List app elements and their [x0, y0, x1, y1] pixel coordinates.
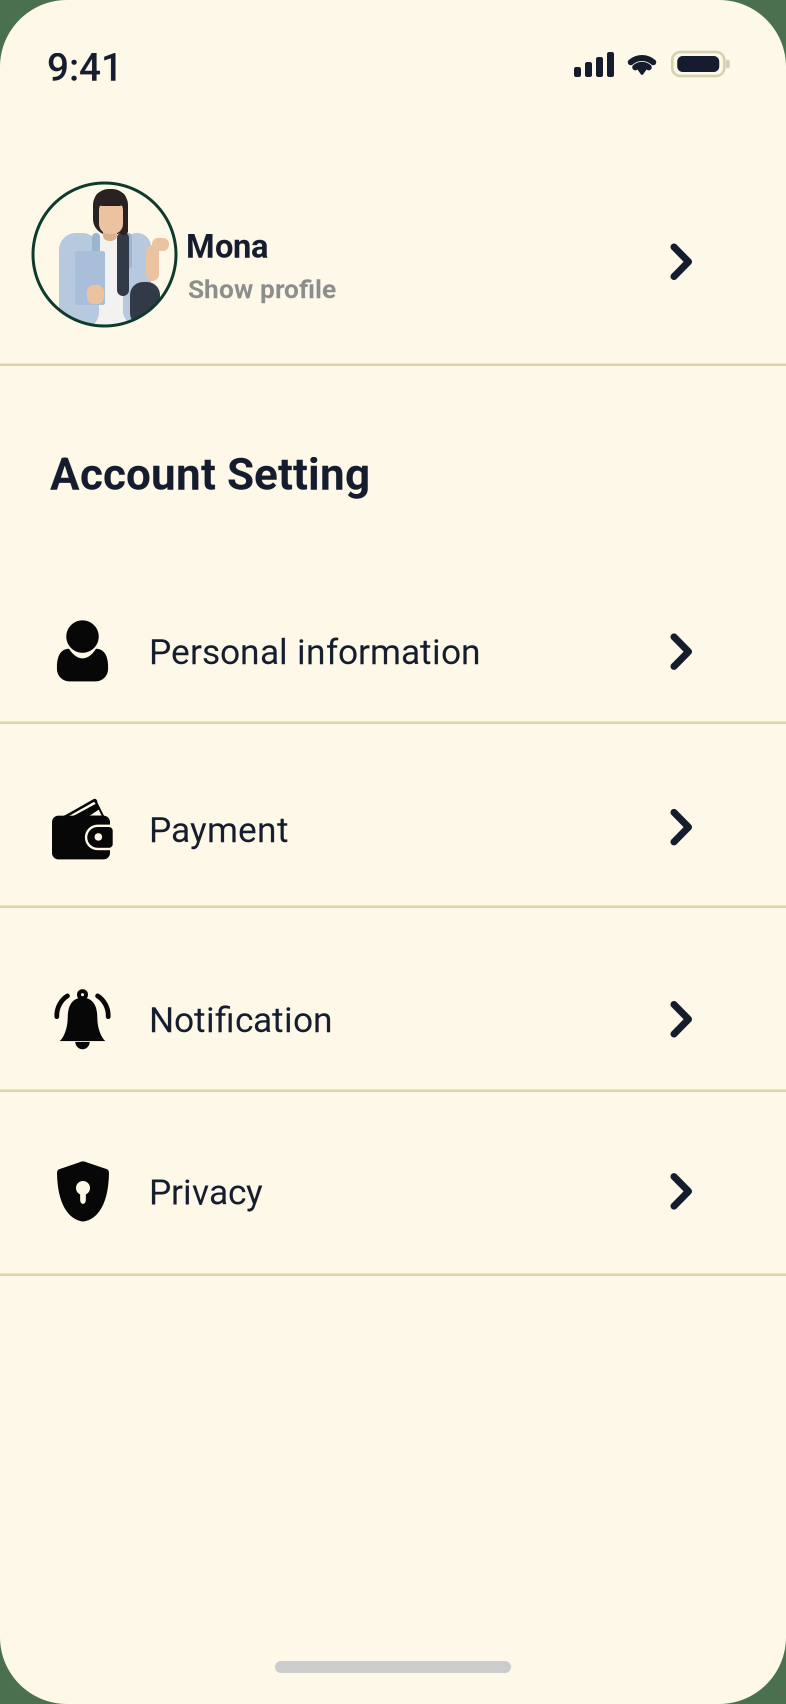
button[interactable]: Notification	[0, 906, 786, 1090]
staticText: Privacy	[149, 1172, 263, 1213]
staticText: Payment	[149, 809, 289, 851]
button[interactable]: Mona	[0, 162, 786, 347]
button[interactable]: Privacy	[0, 1091, 786, 1275]
staticText: Show profile	[188, 274, 336, 305]
staticText: 9:41	[47, 45, 123, 90]
staticText: Account Setting	[50, 449, 370, 501]
staticText: Mona	[186, 227, 268, 266]
staticText: Personal information	[149, 631, 481, 673]
button[interactable]: Payment	[0, 722, 786, 906]
staticText: Notification	[149, 999, 333, 1041]
button[interactable]: Personal information	[0, 538, 786, 722]
